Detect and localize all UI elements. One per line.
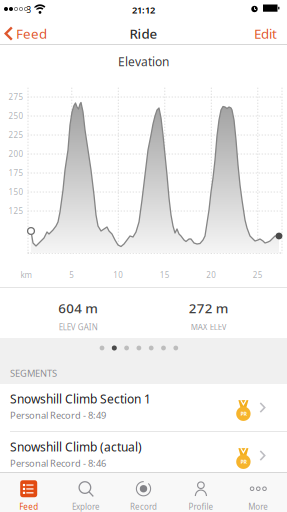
staticText: Edit (254, 25, 277, 42)
staticText: 21:12 (132, 4, 155, 16)
staticText: Ride (129, 25, 157, 42)
button[interactable]: Profile (172, 473, 230, 512)
staticText: Explore (72, 501, 100, 512)
staticText: Personal Record - 8:49 (10, 409, 106, 421)
staticText: Profile (188, 501, 213, 512)
staticText: km (20, 270, 31, 280)
staticText: 175 (8, 168, 23, 178)
staticText: Elevation (118, 53, 169, 69)
staticText: MAX ELEV (191, 322, 227, 332)
staticText: 3 (26, 5, 31, 15)
staticText: 604 m (58, 299, 98, 317)
staticText: 150 (8, 187, 23, 197)
button[interactable]: Explore (57, 473, 115, 512)
staticText: 15 (160, 270, 170, 280)
staticText: 275 (8, 92, 23, 102)
staticText: 10 (113, 270, 123, 280)
staticText: Snowshill Climb (actual) (10, 439, 142, 455)
staticText: 225 (8, 130, 23, 140)
staticText: 125 (8, 206, 23, 216)
button[interactable]: Edit (254, 23, 287, 41)
staticText: Feed (16, 25, 47, 42)
button[interactable]: Snowshill Climb (actual) (0, 432, 287, 479)
staticText: PR (240, 410, 246, 417)
staticText: ELEV GAIN (59, 322, 98, 332)
staticText: Snowshill Climb Section 1 (10, 391, 151, 407)
button[interactable]: Feed (0, 473, 57, 512)
button[interactable]: Record (115, 473, 172, 512)
staticText: 272 m (189, 299, 229, 317)
staticText: SEGMENTS (10, 367, 57, 379)
staticText: 200 (8, 149, 23, 159)
staticText: Personal Record - 8:46 (10, 457, 106, 469)
button[interactable]: Feed (0, 25, 47, 42)
staticText: More (248, 501, 268, 512)
staticText: 5 (69, 270, 74, 280)
button[interactable]: Snowshill Climb Section 1 (0, 384, 287, 431)
staticText: Feed (19, 501, 38, 512)
staticText: 25 (253, 270, 263, 280)
staticText: 250 (8, 111, 23, 121)
staticText: Record (130, 501, 157, 512)
staticText: 20 (206, 270, 216, 280)
staticText: PR (240, 458, 246, 465)
button[interactable]: More (230, 473, 287, 512)
